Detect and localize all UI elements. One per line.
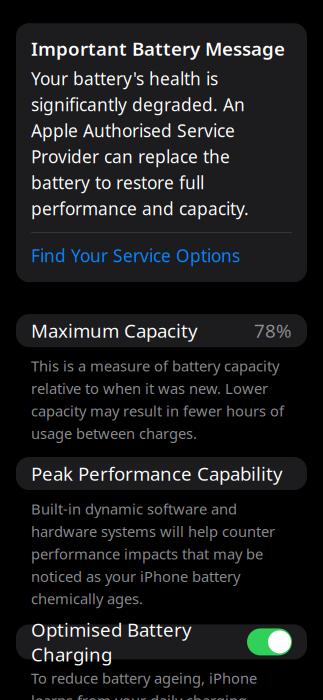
staticText: Built-in dynamic software and hardware s… <box>31 499 275 608</box>
staticText: 78% <box>254 318 292 343</box>
button[interactable]: Find Your Service Options <box>31 233 292 269</box>
button[interactable]: Maximum Capacity <box>16 314 307 347</box>
staticText: Peak Performance Capability <box>31 461 283 486</box>
staticText: Your battery's health is significantly d… <box>31 67 249 220</box>
button[interactable]: Peak Performance Capability <box>16 457 307 490</box>
staticText: This is a measure of battery capacity re… <box>31 356 284 443</box>
staticText: Maximum Capacity <box>31 318 198 343</box>
button[interactable]: Optimised Battery Charging <box>16 624 307 659</box>
staticText: Optimised Battery Charging <box>31 617 192 667</box>
staticText: To reduce battery ageing, iPhone learns … <box>31 668 277 700</box>
staticText: Find Your Service Options <box>31 244 240 267</box>
staticText: Important Battery Message <box>31 36 285 61</box>
